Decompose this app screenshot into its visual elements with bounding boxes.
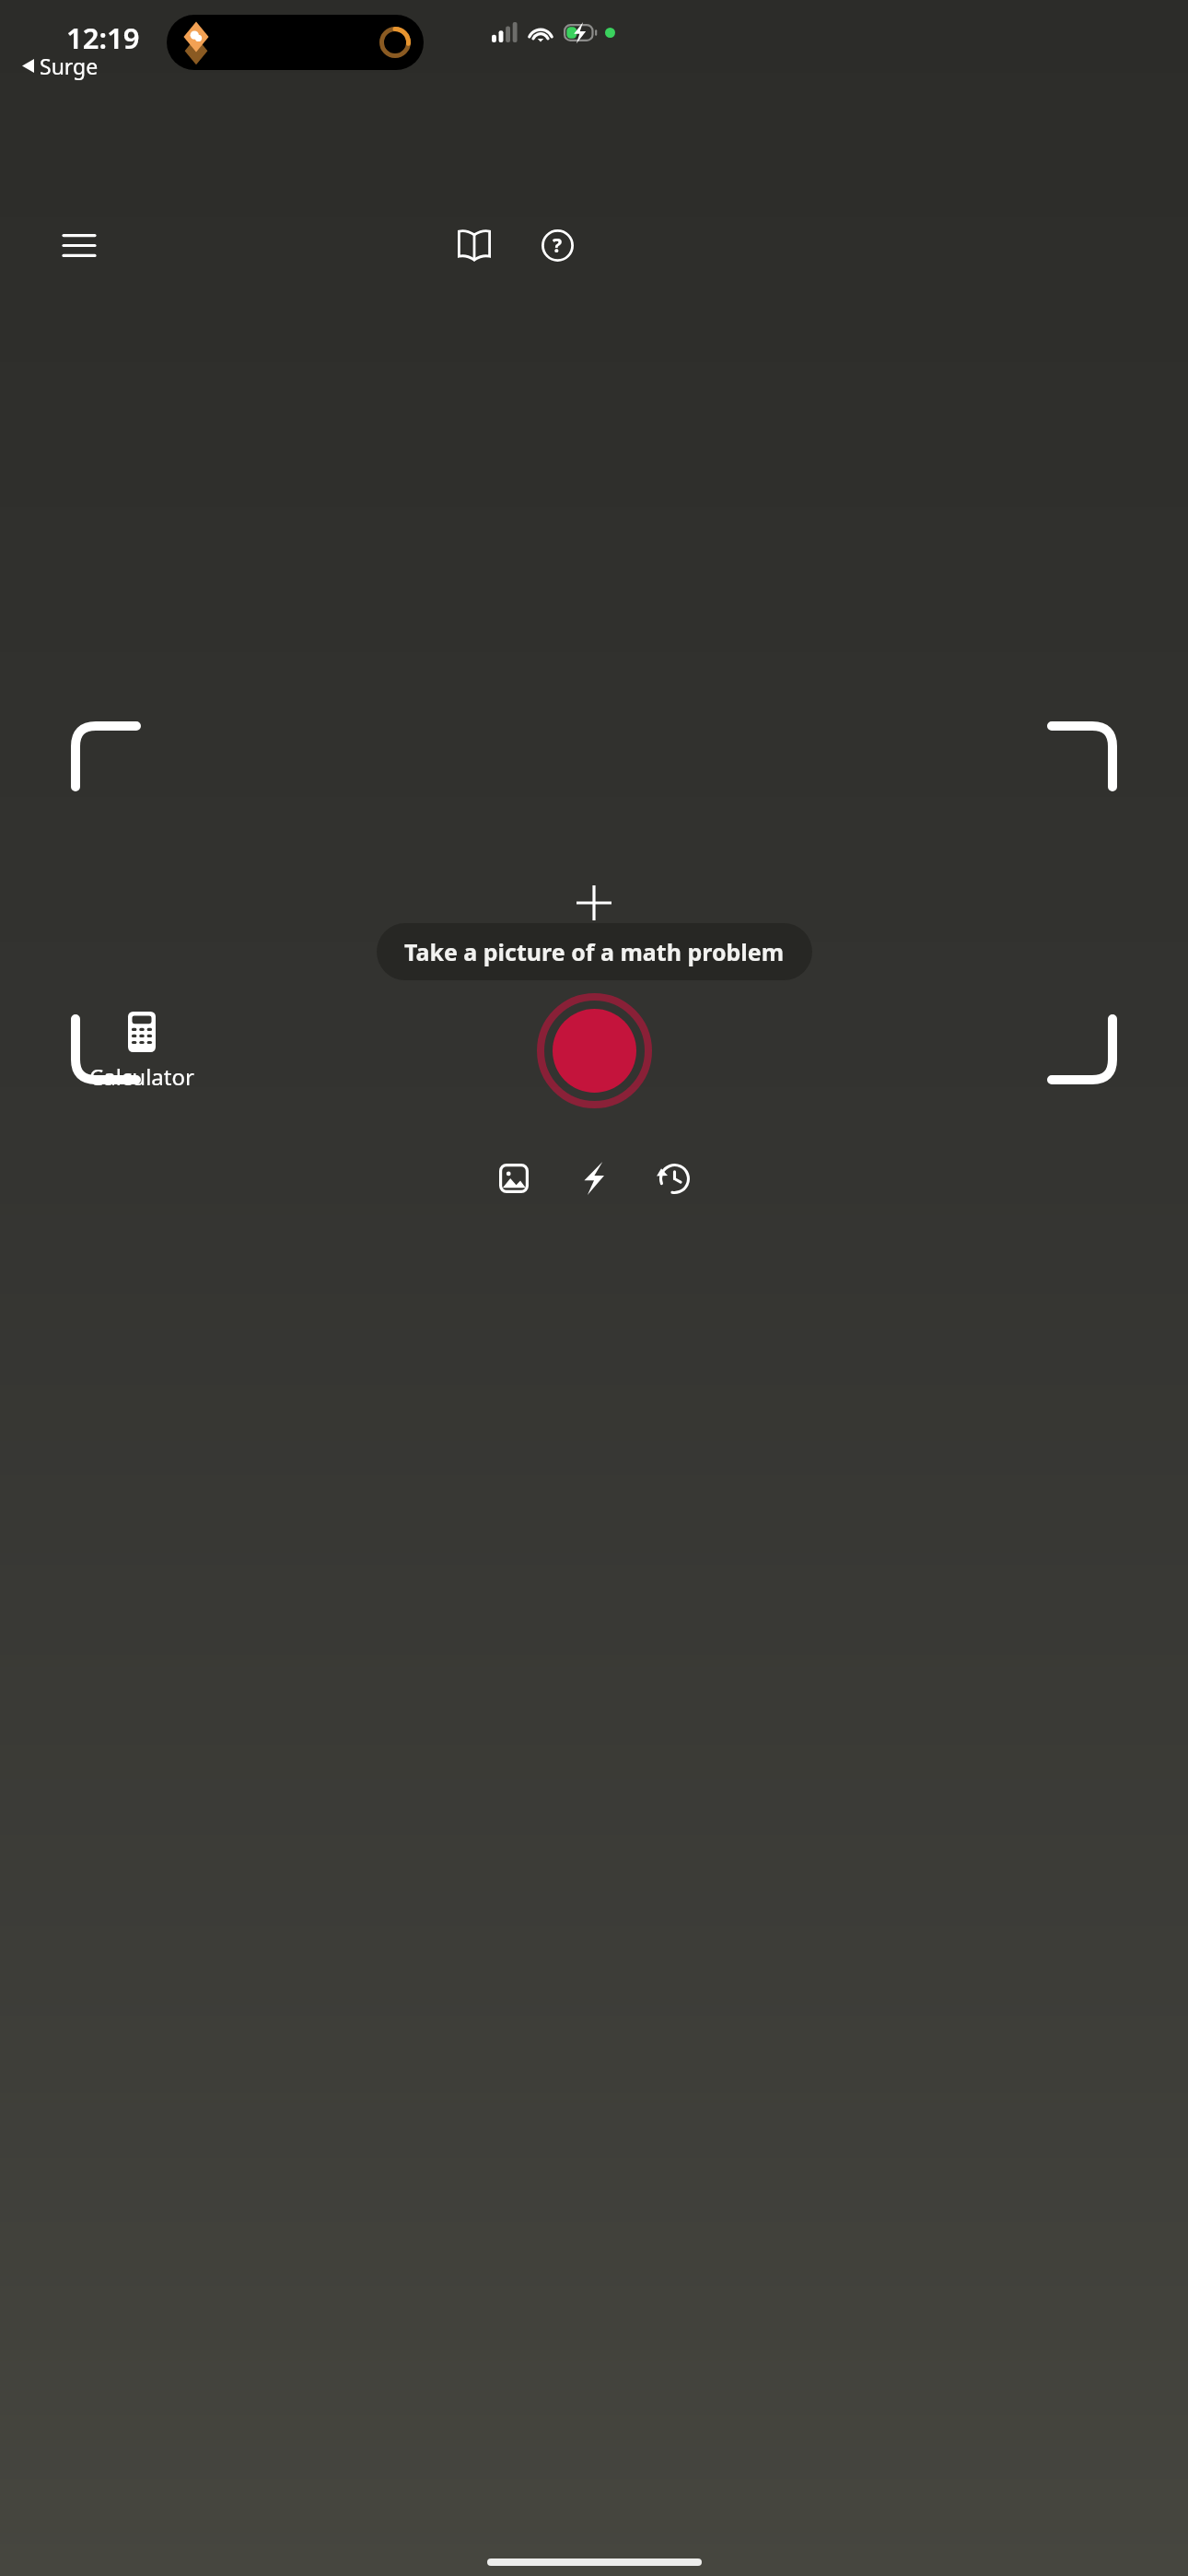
button[interactable]: Gallery <box>486 1151 542 1206</box>
button[interactable]: Flash <box>566 1151 622 1206</box>
staticText: ? <box>553 232 563 259</box>
staticText: Take a picture of a math problem <box>404 936 785 967</box>
staticText: Surge <box>40 52 99 80</box>
button[interactable]: History <box>646 1151 702 1206</box>
button[interactable]: Surge <box>22 52 99 80</box>
button[interactable]: Shutter <box>537 993 652 1108</box>
button[interactable]: Guide <box>448 219 500 271</box>
staticText: Calculator <box>89 1061 194 1092</box>
button[interactable]: Menu <box>53 219 105 271</box>
button[interactable]: Take a picture of a math problem <box>377 923 812 980</box>
button[interactable]: Help <box>531 219 583 271</box>
button[interactable]: Calculator <box>87 1012 196 1092</box>
staticText: 12:19 <box>66 18 140 57</box>
